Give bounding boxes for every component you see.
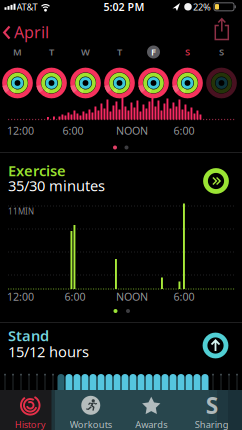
staticText: F [151, 46, 156, 58]
staticText: NOON [116, 289, 148, 304]
staticText: 35/30 minutes [8, 176, 105, 195]
button[interactable]: S [181, 389, 242, 430]
staticText: W [81, 46, 90, 58]
button[interactable]: Workouts [60, 389, 121, 430]
button[interactable]: Awards [121, 389, 181, 430]
button[interactable]: T [102, 44, 136, 106]
staticText: Workouts [70, 418, 112, 430]
staticText: 12:00 [7, 123, 34, 138]
staticText: T [49, 46, 54, 58]
staticText: 11MIN [8, 206, 34, 217]
staticText: History [15, 418, 46, 430]
staticText: 12:00 [7, 289, 34, 304]
staticText: S [185, 46, 190, 58]
staticText: Awards [135, 418, 167, 430]
button[interactable]: W [68, 44, 102, 106]
staticText: Exercise [8, 161, 66, 180]
staticText: 6:00 [173, 289, 194, 304]
staticText: 5:02 PM [103, 0, 144, 14]
staticText: 22% [193, 1, 211, 13]
staticText: M [13, 46, 22, 58]
staticText: S [219, 46, 224, 58]
button[interactable]: T [34, 44, 68, 106]
staticText: NOON [116, 123, 148, 138]
staticText: T [117, 46, 122, 58]
staticText: 6:00 [173, 123, 194, 138]
staticText: April [14, 21, 49, 43]
staticText: 15/12 hours [8, 342, 89, 361]
staticText: S [206, 390, 218, 420]
staticText: 6:00 [62, 123, 83, 138]
staticText: Stand [8, 326, 49, 345]
staticText: Sharing [195, 418, 229, 430]
button[interactable]: History [0, 389, 60, 430]
button[interactable]: April [3, 19, 59, 45]
button[interactable] [210, 17, 234, 43]
staticText: 6:00 [64, 289, 85, 304]
staticText: AT&T [16, 1, 37, 13]
button[interactable]: S [204, 44, 238, 106]
button[interactable]: S [170, 44, 204, 106]
button[interactable]: F [136, 44, 170, 106]
button[interactable]: M [0, 44, 34, 106]
